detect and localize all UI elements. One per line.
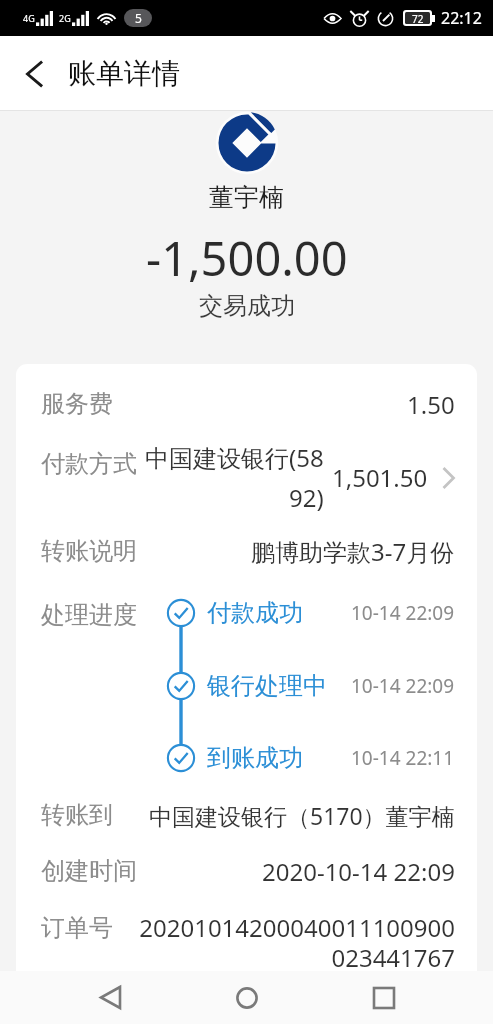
staticText: 4G xyxy=(23,12,35,24)
staticText: 22:12 xyxy=(441,7,482,29)
staticText: 92) xyxy=(289,481,324,514)
staticText: 中国建设银行（5170）董宇楠 xyxy=(149,800,455,831)
staticText: 转账到 xyxy=(41,800,113,830)
staticText: 72 xyxy=(412,12,424,24)
staticText: 账单详情 xyxy=(68,56,180,91)
staticText: 处理进度 xyxy=(41,600,137,630)
staticText: 2G xyxy=(59,12,71,24)
staticText: 10-14 22:11 xyxy=(351,745,455,771)
staticText: 鹏博助学款3-7月份 xyxy=(251,535,455,568)
staticText: -1,500.00 xyxy=(146,226,348,290)
staticText: 20201014200040011100900023441767 xyxy=(129,911,455,971)
staticText: 1.50 xyxy=(407,388,455,421)
staticText: 董宇楠 xyxy=(209,182,284,213)
button[interactable]: Recents xyxy=(357,971,410,1024)
staticText: 转账说明 xyxy=(41,536,137,566)
staticText: 中国建设银行(58 xyxy=(145,441,324,474)
button[interactable]: Home xyxy=(220,971,273,1024)
button[interactable]: 付款方式 xyxy=(16,432,477,523)
staticText: 订单号 xyxy=(41,913,113,943)
staticText: 10-14 22:09 xyxy=(351,600,455,626)
staticText: 1,501.50 xyxy=(332,461,428,494)
staticText: 交易成功 xyxy=(199,291,295,321)
button[interactable]: Back xyxy=(84,971,137,1024)
staticText: 10-14 22:09 xyxy=(351,673,455,699)
staticText: 创建时间 xyxy=(41,856,137,886)
staticText: 付款方式 xyxy=(41,449,137,479)
staticText: 到账成功 xyxy=(207,743,303,773)
staticText: 5 xyxy=(135,10,142,26)
staticText: 2020-10-14 22:09 xyxy=(262,855,455,888)
button[interactable]: Back xyxy=(0,36,68,111)
staticText: 银行处理中 xyxy=(207,671,327,701)
staticText: 服务费 xyxy=(41,389,113,419)
staticText: 付款成功 xyxy=(207,598,303,628)
